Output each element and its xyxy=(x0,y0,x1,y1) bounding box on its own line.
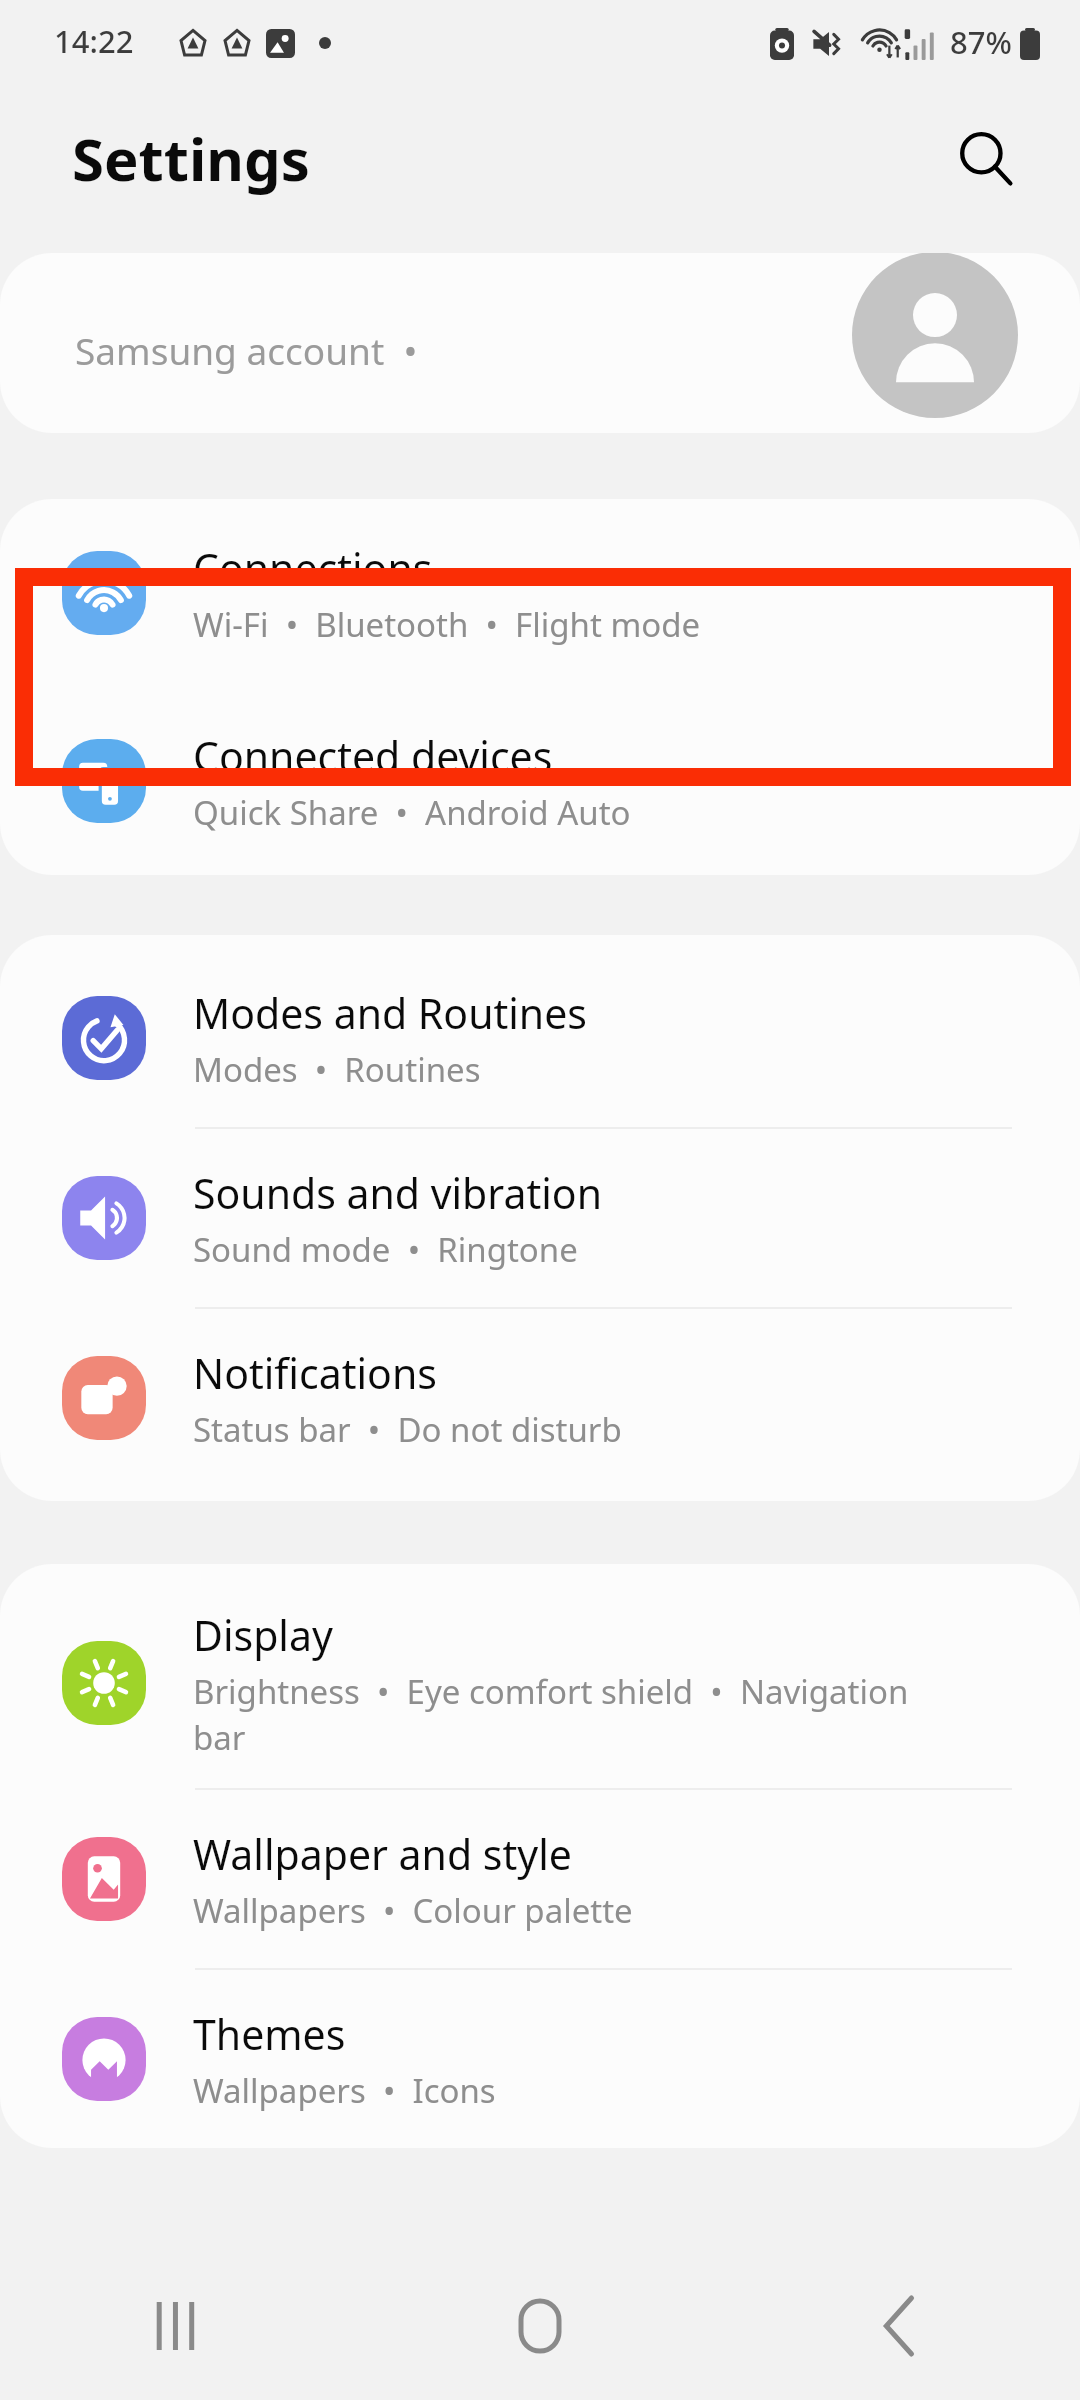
staticText: Wallpaper and style xyxy=(193,1826,572,1882)
staticText: Modes and Routines xyxy=(193,985,587,1041)
button[interactable]: Samsung account • xyxy=(0,253,1080,433)
staticText: Connected devices xyxy=(193,728,553,784)
button[interactable]: Modes and Routines xyxy=(0,949,1080,1127)
button[interactable]: Home xyxy=(360,2252,720,2400)
button[interactable]: Connections xyxy=(0,499,1080,687)
staticText: 87% xyxy=(950,21,1012,63)
staticText: Display xyxy=(193,1607,333,1663)
staticText: 14:22 xyxy=(54,20,134,62)
staticText: Wallpapers • Colour palette xyxy=(193,1888,633,1933)
staticText: Themes xyxy=(193,2006,346,2062)
staticText: Quick Share • Android Auto xyxy=(193,790,631,835)
button[interactable]: Display xyxy=(0,1578,1080,1788)
staticText: Wi-Fi • Bluetooth • Flight mode xyxy=(193,602,701,647)
staticText: Status bar • Do not disturb xyxy=(193,1407,622,1452)
staticText: Samsung account • xyxy=(75,325,418,375)
staticText: Connections xyxy=(193,540,433,596)
staticText: Settings xyxy=(72,119,310,198)
staticText: Wallpapers • Icons xyxy=(193,2068,496,2113)
button[interactable]: Themes xyxy=(0,1970,1080,2148)
button[interactable]: Search xyxy=(938,111,1034,207)
staticText: Notifications xyxy=(193,1345,437,1401)
button[interactable]: Notifications xyxy=(0,1309,1080,1487)
button[interactable]: Sounds and vibration xyxy=(0,1129,1080,1307)
button[interactable]: Connected devices xyxy=(0,687,1080,875)
staticText: Sound mode • Ringtone xyxy=(193,1227,578,1272)
staticText: Sounds and vibration xyxy=(193,1165,602,1221)
staticText: Brightness • Eye comfort shield • Naviga… xyxy=(193,1669,909,1760)
staticText: Modes • Routines xyxy=(193,1047,481,1092)
button[interactable]: Wallpaper and style xyxy=(0,1790,1080,1968)
button[interactable]: Recent apps xyxy=(0,2252,360,2400)
button[interactable]: Back xyxy=(720,2252,1080,2400)
